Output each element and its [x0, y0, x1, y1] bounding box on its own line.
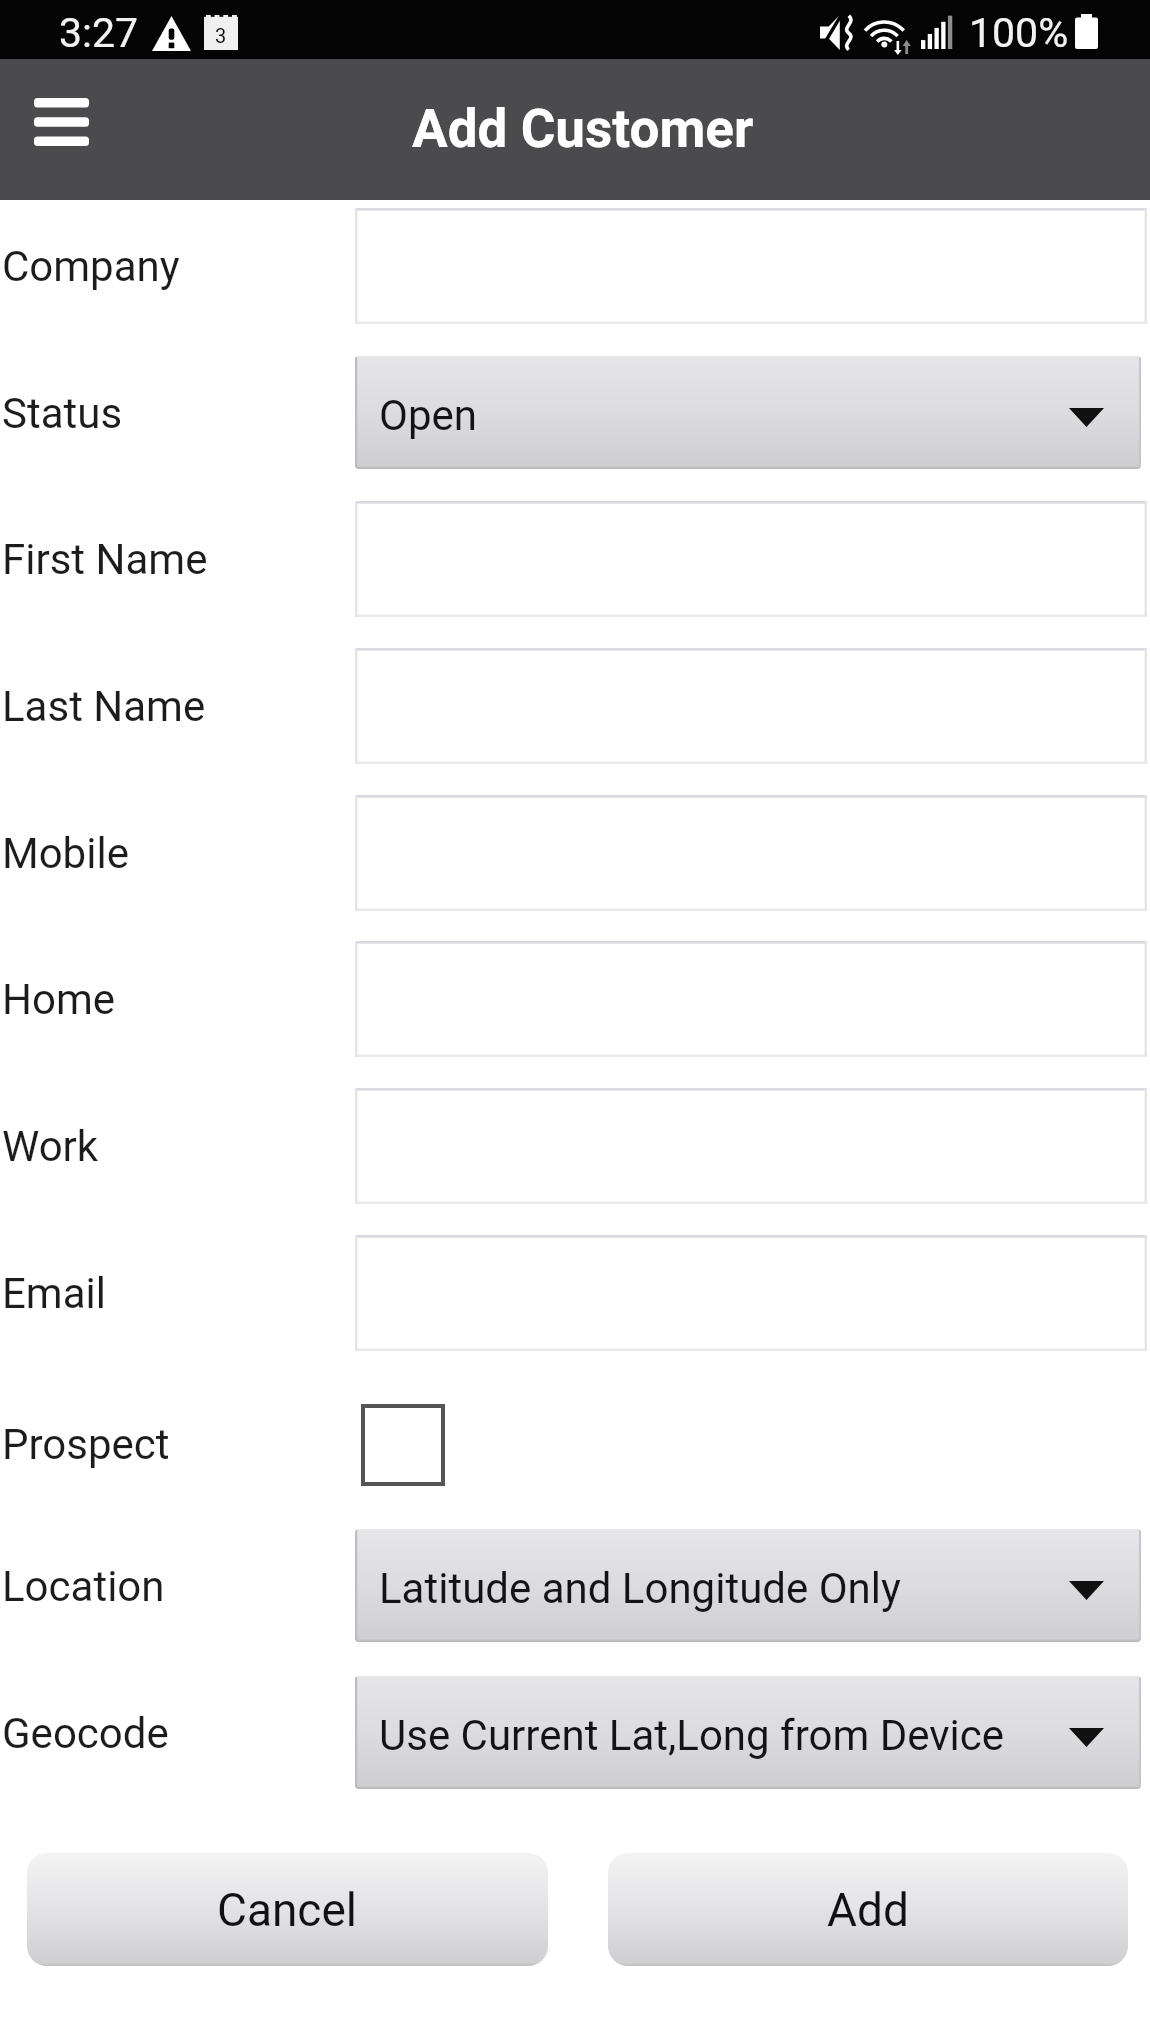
- staticText: First Name: [2, 535, 208, 584]
- staticText: Mobile: [2, 829, 129, 878]
- staticText: Use Current Lat,Long from Device: [379, 1711, 1005, 1760]
- staticText: Last Name: [2, 682, 206, 731]
- button[interactable]: Use Current Lat,Long from Device: [355, 1676, 1141, 1789]
- button[interactable]: Cancel: [27, 1853, 548, 1966]
- staticText: Add: [827, 1883, 909, 1937]
- button[interactable]: Company: [355, 208, 1147, 324]
- staticText: Work: [2, 1122, 99, 1171]
- staticText: Cancel: [217, 1883, 358, 1937]
- button[interactable]: Last Name: [355, 648, 1147, 764]
- button[interactable]: Home: [355, 941, 1147, 1057]
- button[interactable]: Latitude and Longitude Only: [355, 1529, 1141, 1642]
- button[interactable]: Open: [355, 356, 1141, 469]
- staticText: Geocode: [2, 1709, 169, 1758]
- staticText: Location: [2, 1562, 165, 1611]
- button[interactable]: Open navigation menu: [7, 61, 115, 173]
- staticText: Home: [2, 975, 116, 1024]
- button[interactable]: First Name: [355, 501, 1147, 617]
- staticText: Latitude and Longitude Only: [379, 1564, 901, 1613]
- staticText: Status: [2, 389, 123, 438]
- staticText: Add Customer: [412, 98, 754, 160]
- staticText: 3:27: [59, 9, 139, 57]
- staticText: 3: [215, 24, 227, 47]
- staticText: Email: [2, 1269, 106, 1318]
- staticText: Company: [2, 242, 180, 291]
- button[interactable]: Prospect checkbox: [363, 1406, 443, 1484]
- button[interactable]: Work: [355, 1088, 1147, 1204]
- staticText: 100%: [969, 9, 1069, 57]
- staticText: Open: [379, 391, 477, 440]
- button[interactable]: Mobile: [355, 795, 1147, 911]
- button[interactable]: Add: [608, 1853, 1128, 1966]
- staticText: Prospect: [2, 1420, 170, 1469]
- button[interactable]: Email: [355, 1235, 1147, 1351]
